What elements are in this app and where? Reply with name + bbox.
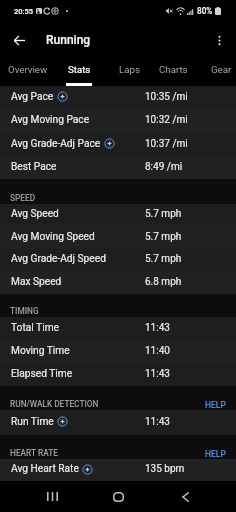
staticText: Best Pace [11,161,57,173]
staticText: 10:37 /mi [145,138,188,150]
staticText: Running [46,33,91,47]
staticText: Elapsed Time [11,368,73,380]
staticText: Avg Heart Rate [11,463,79,475]
staticText: 8:49 /mi [145,161,183,173]
staticText: 11:43 [145,368,170,380]
staticText: 6.8 mph [145,276,182,288]
button[interactable]: Moving Time [0,340,236,363]
button[interactable]: Best Pace [0,156,236,179]
staticText: Charts [159,64,188,75]
button[interactable]: Run Time [0,410,236,435]
staticText: Overview [8,64,48,75]
staticText: 80% [197,6,213,16]
button[interactable]: Avg Moving Speed [0,226,236,249]
staticText: HEART RATE [10,448,58,458]
button[interactable]: Avg Heart Rate [0,459,236,481]
button[interactable]: Laps [107,58,151,86]
staticText: 10:35 /mi [145,91,188,103]
button[interactable]: Charts [151,58,195,86]
staticText: 10:32 /mi [145,114,188,126]
button[interactable]: Back [6,27,32,53]
staticText: SPEED [10,193,36,203]
staticText: 5.7 mph [145,253,182,265]
button[interactable]: More options [206,27,232,53]
staticText: Gear [211,64,232,75]
button[interactable]: Avg Grade-Adj Speed [0,249,236,271]
button[interactable]: Total Time [0,317,236,340]
staticText: Moving Time [11,345,70,357]
button[interactable]: Gear [199,58,236,86]
staticText: 5.7 mph [145,231,182,243]
button[interactable]: Avg Moving Pace [0,109,236,133]
button[interactable]: Recent apps [26,481,78,512]
staticText: Run Time [11,416,54,428]
staticText: Stats [68,64,91,75]
button[interactable]: Avg Pace [0,86,236,109]
staticText: Avg Moving Pace [11,114,90,126]
staticText: Avg Grade-Adj Pace [11,138,101,150]
button[interactable]: Avg Speed [0,204,236,226]
button[interactable]: Avg Grade-Adj Pace [0,133,236,156]
button[interactable]: Overview [6,58,50,86]
button[interactable]: HELP [204,449,227,459]
staticText: RUN/WALK DETECTION [10,399,99,409]
button[interactable]: Elapsed Time [0,363,236,386]
staticText: Avg Pace [11,91,54,103]
staticText: Total Time [11,322,59,334]
staticText: Avg Moving Speed [11,231,95,243]
staticText: Avg Speed [11,208,59,220]
button[interactable]: Home [92,481,144,512]
staticText: 11:43 [145,322,170,334]
staticText: Laps [119,64,140,75]
staticText: Max Speed [11,276,62,288]
staticText: 135 bpm [145,463,185,475]
button[interactable]: Max Speed [0,271,236,294]
button[interactable]: Back [159,481,211,512]
button[interactable]: HELP [204,400,227,410]
staticText: 5.7 mph [145,208,182,220]
staticText: HELP [205,449,226,459]
staticText: HELP [205,400,226,410]
staticText: TIMING [10,306,39,316]
staticText: 11:43 [145,416,170,428]
button[interactable]: Stats [57,58,101,86]
staticText: 20:55 [14,7,34,16]
staticText: 11:40 [145,345,170,357]
staticText: Avg Grade-Adj Speed [11,253,106,265]
